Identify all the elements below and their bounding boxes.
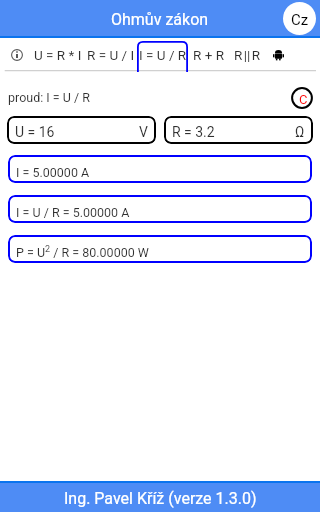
button[interactable]: R || R [231, 41, 263, 72]
staticText: proud: I = U / R [8, 90, 90, 105]
staticText: Cz [291, 11, 309, 29]
staticText: U = R * I [34, 47, 82, 63]
button[interactable]: I = U / R [137, 41, 188, 72]
button[interactable]: I = U / R = 5.00000 A [8, 195, 312, 223]
button[interactable]: R = U / I [85, 41, 137, 72]
button[interactable]: R = 3.2 [164, 116, 313, 144]
button[interactable]: P = U2 / R = 80.00000 W [8, 235, 312, 263]
staticText: Ing. Pavel Kříž (verze 1.3.0) [64, 489, 257, 508]
button[interactable]: I = 5.00000 A [8, 155, 312, 183]
staticText: I = 5.00000 A [16, 165, 90, 180]
staticText: I = U / R [139, 47, 187, 63]
staticText: Ω [295, 124, 305, 140]
staticText: P = U2 / R = 80.00000 W [16, 244, 149, 260]
button[interactable]: U = R * I [31, 41, 84, 72]
staticText: V [139, 124, 148, 140]
button[interactable]: Ing. Pavel Kříž (verze 1.3.0) [0, 483, 320, 512]
staticText: U = 16 [15, 124, 55, 140]
button[interactable]: Cz [283, 2, 316, 35]
button[interactable]: U = 16 [7, 116, 156, 144]
button[interactable]: Info [11, 49, 23, 61]
staticText: R || R [234, 47, 260, 63]
staticText: R + R [193, 47, 224, 63]
button[interactable]: R + R [191, 41, 226, 72]
staticText: I = U / R = 5.00000 A [16, 205, 130, 220]
staticText: Ohmův zákon [111, 10, 209, 29]
button[interactable]: Android [273, 49, 284, 60]
staticText: C [299, 92, 308, 107]
staticText: R = U / I [87, 47, 135, 63]
button[interactable]: Clear [291, 87, 313, 109]
staticText: R = 3.2 [172, 124, 215, 140]
